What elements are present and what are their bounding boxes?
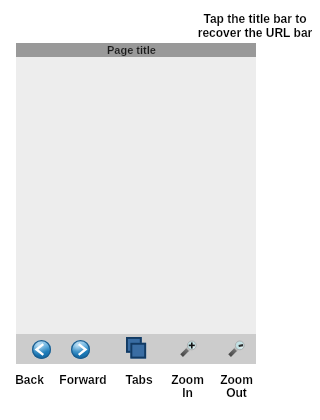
- staticText: Tabs: [125, 373, 153, 386]
- staticText: Back: [15, 373, 44, 386]
- staticText: Forward: [59, 373, 107, 386]
- staticText: Out: [226, 386, 247, 399]
- button[interactable]: Tabs: [126, 337, 147, 359]
- staticText: In: [182, 386, 193, 399]
- staticText: Tap the title bar to recover the URL bar: [185, 12, 320, 42]
- button[interactable]: Zoom In: [176, 336, 200, 360]
- button[interactable]: Forward: [71, 340, 90, 359]
- button[interactable]: Zoom Out: [224, 336, 248, 360]
- button[interactable]: Page title: [16, 43, 256, 57]
- staticText: Zoom: [171, 373, 204, 386]
- button[interactable]: Back: [32, 340, 51, 359]
- staticText: Page title: [107, 44, 156, 56]
- staticText: Zoom: [220, 373, 253, 386]
